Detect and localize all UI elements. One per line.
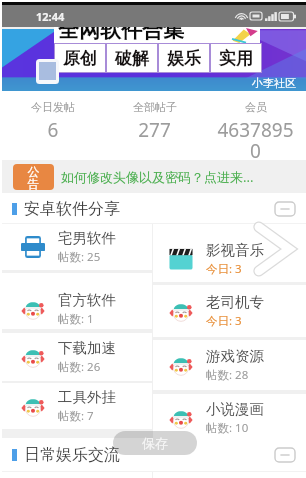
button[interactable]: 小说漫画 [153,394,306,442]
button[interactable]: 下载加速 [2,333,152,381]
button[interactable]: Collapse section [275,448,295,462]
staticText: 帖数: 10 [206,420,249,436]
staticText: 游戏资源 [206,347,264,365]
button[interactable]: 老司机专 [153,285,306,337]
staticText: 小李社区 [252,76,296,90]
button[interactable]: 娱乐 [159,44,209,72]
button[interactable]: 今日发帖 [2,91,104,160]
staticText: 今日: 3 [206,261,242,277]
staticText: 原创 [63,48,97,69]
button[interactable]: 安卓软件分享 [2,193,306,224]
staticText: 官方软件 [58,291,116,309]
staticText: 帖数: 1 [58,311,94,327]
button[interactable]: 实用 [211,44,261,72]
staticText: 娱乐 [167,48,201,69]
button[interactable]: 影视音乐 [153,224,306,282]
staticText: 安卓软件分享 [24,199,120,219]
staticText: 帖数: 7 [58,408,94,424]
staticText: 12:44 [36,9,65,24]
staticText: 下载加速 [58,339,116,357]
staticText: 日常娱乐交流 [24,445,120,465]
staticText: 今日: 3 [206,313,242,329]
staticText: 4637895 0 [210,117,301,160]
staticText: 破解 [115,48,149,69]
button[interactable]: 宅男软件 [2,224,152,270]
staticText: 影视音乐 [206,241,264,259]
staticText: 全部帖子 [133,100,177,114]
staticText: 工具外挂 [58,388,116,406]
button[interactable]: 会员 [205,91,306,160]
staticText: 帖数: 25 [58,249,101,265]
button[interactable]: 全部帖子 [104,91,205,160]
staticText: 277 [109,117,200,143]
button[interactable]: 原创 [55,44,105,72]
staticText: 会员 [245,100,267,114]
staticText: 今日发帖 [31,100,75,114]
staticText: 全网软件合集 [58,17,184,43]
button[interactable]: 官方软件 [2,273,152,329]
staticText: 宅男软件 [58,229,116,247]
staticText: 帖数: 26 [58,359,101,375]
staticText: 小说漫画 [206,400,264,418]
button[interactable]: 游戏资源 [153,340,306,390]
staticText: 实用 [219,48,253,69]
button[interactable]: 工具外挂 [2,383,152,429]
button[interactable]: 日常娱乐交流 [2,438,306,472]
button[interactable]: 公告 [2,160,306,193]
staticText: 帖数: 28 [206,367,249,383]
button[interactable]: Collapse section [275,202,295,216]
button[interactable]: 破解 [107,44,157,72]
staticText: 保存 [142,435,168,451]
staticText: 公告 [27,164,40,190]
staticText: 老司机专 [206,293,264,311]
staticText: 6 [7,117,99,143]
staticText: 如何修改头像以及密码？点进来... [61,168,254,186]
